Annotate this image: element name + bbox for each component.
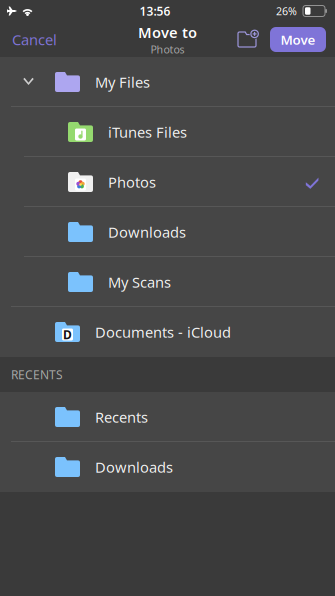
button[interactable]: Recents xyxy=(0,392,335,442)
button[interactable]: Photos xyxy=(0,157,335,207)
staticText: My Scans xyxy=(108,272,171,292)
staticText: RECENTS xyxy=(11,366,63,382)
staticText: Downloads xyxy=(95,457,173,477)
staticText: Cancel xyxy=(12,30,57,49)
button[interactable]: iTunes Files xyxy=(0,107,335,157)
staticText: D xyxy=(63,326,72,342)
staticText: iTunes Files xyxy=(108,122,187,142)
staticText: My Files xyxy=(95,72,150,92)
staticText: Downloads xyxy=(108,222,186,242)
button[interactable]: D xyxy=(0,307,335,357)
staticText: Photos xyxy=(150,42,184,56)
button[interactable]: New Folder xyxy=(231,22,263,57)
button[interactable]: Cancel xyxy=(0,22,69,57)
staticText: Move to xyxy=(138,23,197,42)
staticText: 13:56 xyxy=(139,3,170,19)
staticText: Move xyxy=(280,31,315,48)
staticText: Documents - iCloud xyxy=(95,322,231,342)
staticText: 26% xyxy=(276,4,297,18)
button[interactable]: My Files xyxy=(0,57,335,107)
staticText: Photos xyxy=(108,172,156,192)
button[interactable]: Downloads xyxy=(0,207,335,257)
staticText: Recents xyxy=(95,407,148,427)
button[interactable]: My Scans xyxy=(0,257,335,307)
button[interactable]: Downloads xyxy=(0,442,335,492)
button[interactable]: Move xyxy=(270,27,326,52)
